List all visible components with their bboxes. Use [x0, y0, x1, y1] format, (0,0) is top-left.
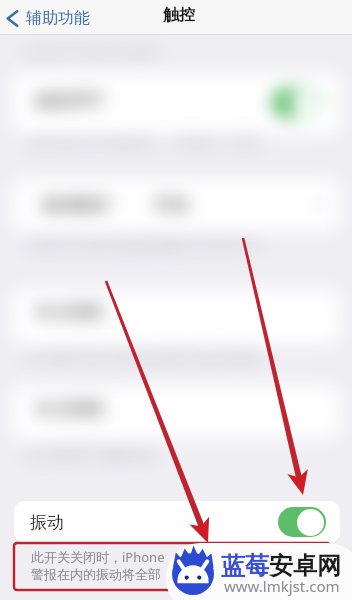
button[interactable]: 振动开关 — [278, 507, 326, 537]
staticText: 触感触控 快速 — [43, 192, 190, 215]
staticText: 触控 — [163, 5, 195, 25]
staticText: 如果你难以使用触摸屏，可调整以下设置。 — [26, 133, 273, 149]
staticText: 辅助功能 — [26, 8, 90, 28]
other: Back — [5, 9, 21, 28]
staticText: 振动 — [30, 512, 64, 533]
button[interactable]: 振动 — [14, 501, 340, 543]
staticText: 控制按住屏幕以触发触感触控所需的时长。 — [26, 236, 273, 252]
staticText: 安卓网 — [269, 551, 341, 581]
staticText: www.lmkjst.com — [224, 576, 340, 596]
staticText: 轻点辅助 — [36, 301, 104, 322]
staticText: 轻点辅助功能可帮助你更轻松地点按屏幕。 — [26, 349, 273, 365]
staticText: 触摸调节 — [36, 90, 104, 111]
staticText: 轻点屏幕即可唤醒设备。 — [26, 446, 169, 462]
staticText: 轻点唤醒 — [36, 398, 104, 419]
button[interactable]: Back — [5, 8, 90, 28]
staticText: 蓝莓 — [221, 551, 269, 581]
staticText: 此开关关闭时，iPhone 警报在内的振动将全部 — [31, 548, 165, 583]
